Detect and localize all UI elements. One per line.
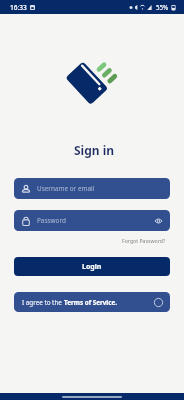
button[interactable]: Forgot Password?	[122, 237, 166, 244]
staticText: Sign in	[74, 142, 115, 158]
staticText: Username or email	[37, 184, 95, 193]
staticText: Login	[82, 262, 102, 272]
staticText: I agree to the	[22, 298, 64, 307]
staticText: 16:33	[10, 3, 27, 12]
button[interactable]: Username or email	[14, 178, 170, 199]
button[interactable]: Login	[14, 257, 170, 276]
button[interactable]: Show password	[154, 216, 163, 226]
button[interactable]: I agree to the	[14, 292, 170, 312]
button[interactable]: Password	[14, 210, 170, 231]
staticText: Password	[37, 216, 66, 225]
staticText: 55%	[156, 3, 169, 11]
staticText: Forgot Password?	[122, 237, 166, 244]
staticText: Terms of Service.	[64, 298, 118, 307]
